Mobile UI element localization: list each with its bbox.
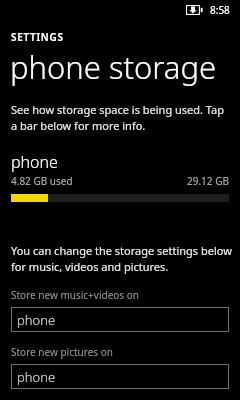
staticText: phone storage xyxy=(10,46,217,88)
staticText: 8:58 xyxy=(210,3,230,17)
staticText: See how storage space is being used. Tap… xyxy=(11,102,225,133)
other: Battery charging xyxy=(186,5,203,15)
staticText: 4.82 GB used xyxy=(11,174,73,188)
staticText: 29.12 GB xyxy=(187,174,229,188)
button[interactable]: phone xyxy=(0,151,240,202)
staticText: phone xyxy=(17,368,56,386)
staticText: SETTINGS xyxy=(11,30,64,44)
staticText: Store new music+videos on xyxy=(11,288,139,302)
staticText: phone xyxy=(11,151,58,173)
button[interactable]: phone xyxy=(11,307,229,332)
staticText: You can change the storage settings belo… xyxy=(11,243,232,274)
button[interactable]: phone xyxy=(11,364,229,389)
staticText: Store new pictures on xyxy=(11,345,113,359)
staticText: phone xyxy=(17,311,56,329)
